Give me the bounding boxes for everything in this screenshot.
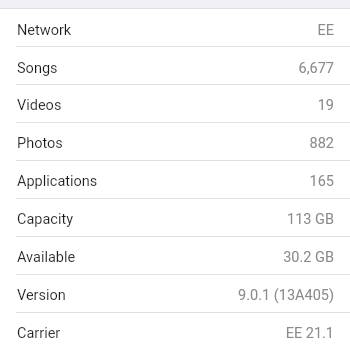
staticText: 882 — [309, 135, 334, 152]
staticText: 6,677 — [298, 60, 334, 77]
button[interactable]: Available — [0, 237, 350, 275]
button[interactable]: Capacity — [0, 199, 350, 237]
button[interactable]: Videos — [0, 85, 350, 123]
staticText: 113 GB — [287, 211, 334, 228]
button[interactable]: Carrier — [0, 313, 350, 349]
staticText: Songs — [17, 60, 58, 77]
button[interactable]: Applications — [0, 161, 350, 199]
button[interactable]: Version — [0, 275, 350, 313]
staticText: Photos — [17, 135, 63, 152]
staticText: Available — [17, 249, 76, 266]
staticText: Version — [17, 287, 66, 304]
staticText: Network — [17, 22, 72, 39]
staticText: Capacity — [17, 211, 74, 228]
button[interactable]: Songs — [0, 48, 350, 86]
staticText: 30.2 GB — [283, 249, 334, 266]
staticText: EE 21.1 — [285, 325, 334, 342]
staticText: 9.0.1 (13A405) — [238, 287, 334, 304]
staticText: Videos — [17, 97, 62, 114]
button[interactable]: Photos — [0, 123, 350, 161]
staticText: Carrier — [17, 325, 61, 342]
staticText: Applications — [17, 173, 98, 190]
staticText: EE — [317, 22, 334, 39]
staticText: 165 — [309, 173, 334, 190]
staticText: 19 — [317, 97, 334, 114]
button[interactable]: Network — [0, 10, 350, 48]
